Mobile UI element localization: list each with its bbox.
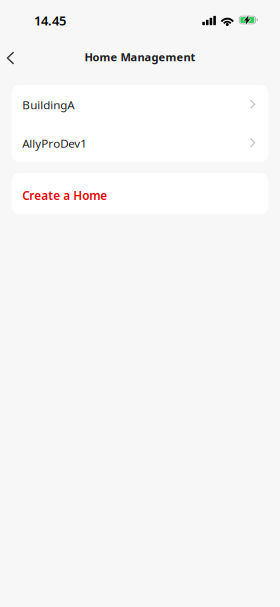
staticText: Home Management xyxy=(84,49,195,65)
button[interactable]: Create a Home xyxy=(11,173,268,214)
button[interactable]: BuildingA xyxy=(11,85,268,123)
staticText: AllyProDev1 xyxy=(22,135,87,151)
button[interactable]: Back xyxy=(0,45,22,71)
staticText: BuildingA xyxy=(22,97,74,113)
button[interactable]: AllyProDev1 xyxy=(11,123,268,162)
staticText: Create a Home xyxy=(22,187,107,203)
staticText: 14.45 xyxy=(34,12,66,29)
